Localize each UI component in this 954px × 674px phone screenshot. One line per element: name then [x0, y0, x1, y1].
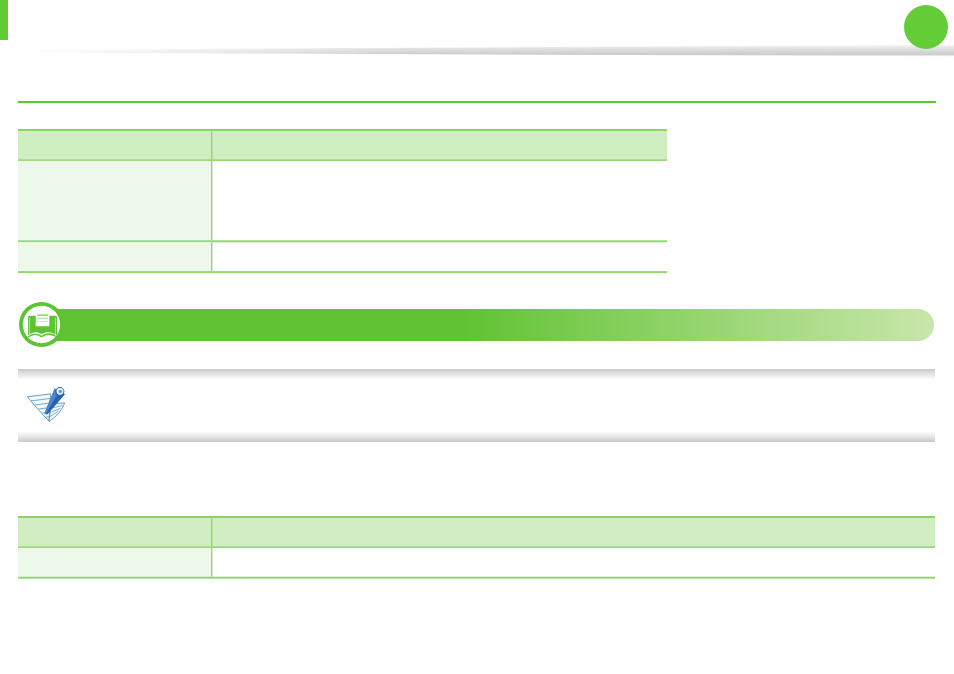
button[interactable]: Guide [19, 302, 64, 347]
button[interactable]: Section heading [30, 309, 934, 341]
button[interactable] [18, 516, 935, 579]
button[interactable]: Note [18, 369, 935, 442]
other: Note [27, 386, 65, 422]
button[interactable]: Chapter marker [904, 5, 948, 49]
button[interactable] [18, 129, 667, 273]
